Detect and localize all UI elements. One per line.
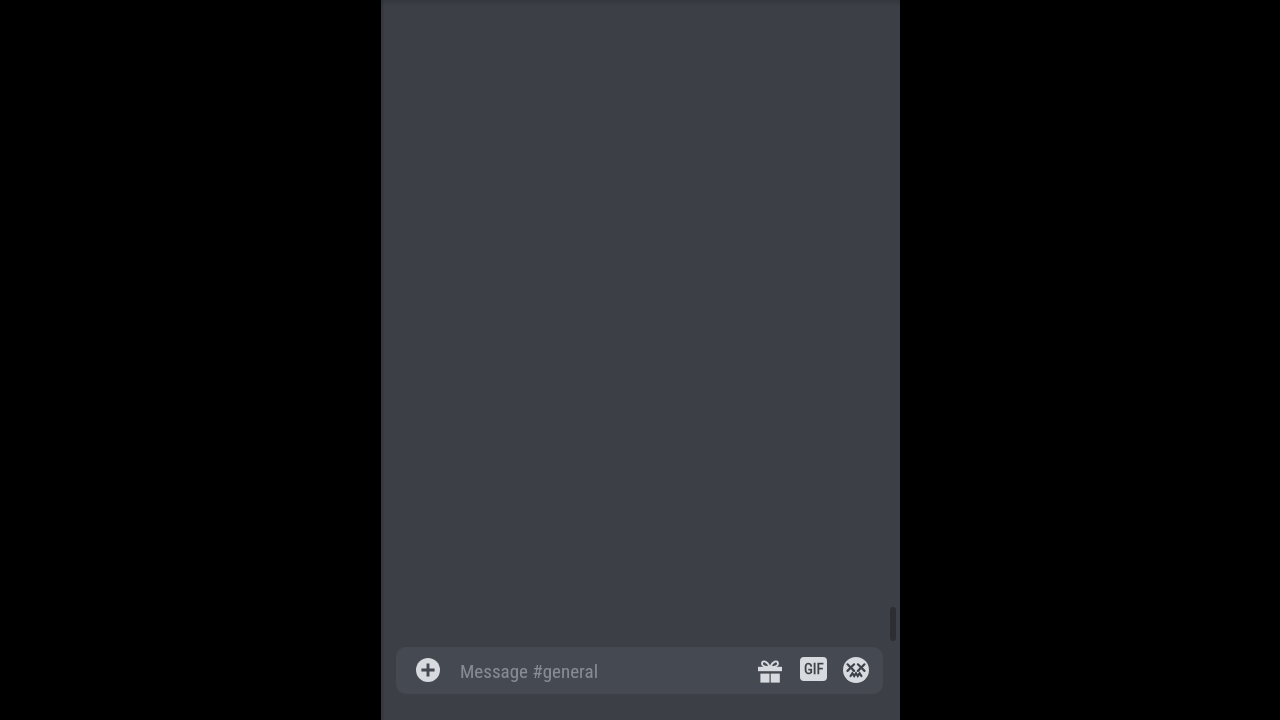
button[interactable]: Send a gift bbox=[758, 659, 782, 683]
button[interactable]: Emoji picker bbox=[843, 657, 869, 683]
staticText: Message #general bbox=[460, 660, 599, 682]
staticText: GIF bbox=[804, 660, 824, 678]
button[interactable]: Add attachment bbox=[416, 658, 440, 682]
button[interactable]: Add attachment bbox=[396, 647, 883, 694]
button[interactable]: GIF picker bbox=[800, 657, 827, 681]
